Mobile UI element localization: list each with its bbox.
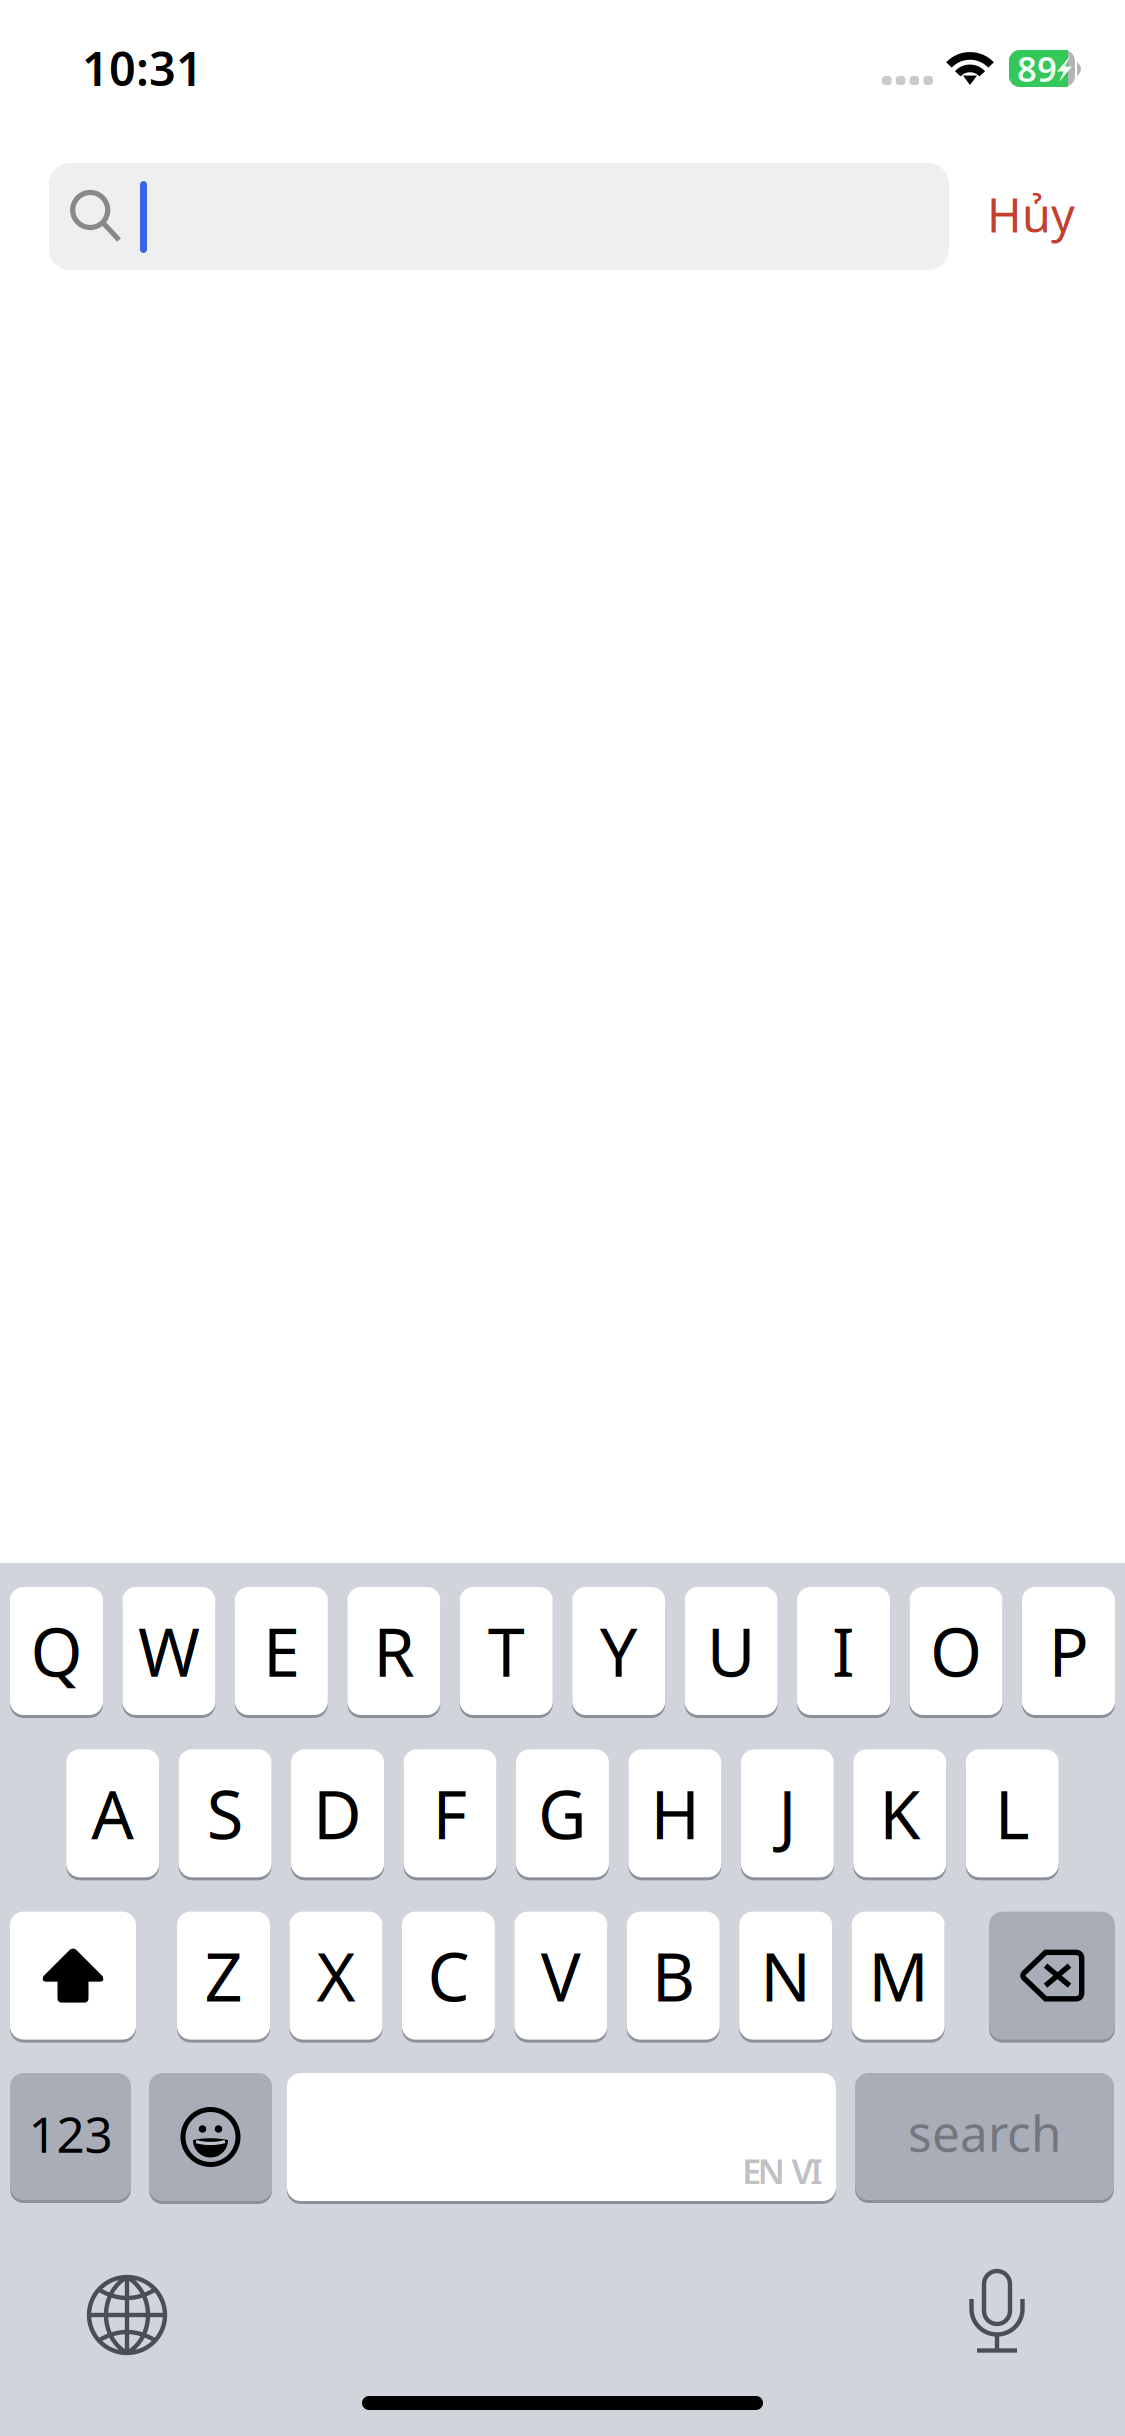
staticText: 10:31 — [82, 37, 203, 99]
button[interactable]: M — [852, 1910, 945, 2042]
staticText: R — [373, 1607, 414, 1695]
button[interactable]: N — [739, 1910, 832, 2042]
button[interactable]: X — [289, 1910, 382, 2042]
staticText: C — [427, 1931, 469, 2020]
staticText: 123 — [28, 2101, 112, 2166]
button[interactable]: 123 — [10, 2071, 131, 2202]
staticText: S — [207, 1769, 244, 1857]
staticText: EN VI — [742, 2148, 823, 2194]
staticText: N — [760, 1931, 811, 2020]
staticText: U — [707, 1607, 756, 1695]
button[interactable]: P — [1022, 1585, 1115, 1717]
button[interactable]: O — [909, 1585, 1002, 1717]
button[interactable]: Y — [572, 1585, 665, 1717]
staticText: X — [316, 1931, 355, 2020]
button[interactable]: Z — [177, 1910, 270, 2042]
staticText: V — [541, 1931, 581, 2020]
button[interactable]: Dictation — [970, 2268, 1026, 2354]
staticText: M — [868, 1931, 928, 2020]
staticText: L — [995, 1769, 1030, 1857]
button[interactable]: Space — [287, 2071, 836, 2203]
staticText: P — [1048, 1607, 1088, 1695]
staticText: K — [879, 1769, 920, 1857]
button[interactable]: I — [797, 1585, 890, 1717]
staticText: T — [488, 1607, 525, 1695]
staticText: O — [930, 1607, 982, 1695]
button[interactable]: S — [179, 1747, 272, 1879]
button[interactable]: E — [235, 1585, 328, 1717]
button[interactable]: H — [628, 1747, 721, 1879]
staticText: search — [908, 2100, 1061, 2165]
staticText: E — [263, 1607, 300, 1695]
button[interactable]: Hủy — [961, 161, 1101, 268]
button[interactable]: K — [853, 1747, 946, 1879]
staticText: 89 — [1017, 45, 1057, 91]
button[interactable]: C — [402, 1910, 495, 2042]
staticText: F — [432, 1769, 467, 1857]
button[interactable]: D — [291, 1747, 384, 1879]
button[interactable]: W — [122, 1585, 215, 1717]
staticText: A — [91, 1769, 134, 1857]
staticText: J — [778, 1769, 796, 1857]
staticText: G — [538, 1769, 587, 1857]
staticText: Q — [30, 1607, 82, 1695]
button[interactable]: Next keyboard — [87, 2275, 167, 2355]
button[interactable]: Shift — [10, 1910, 136, 2042]
button[interactable]: U — [685, 1585, 778, 1717]
staticText: I — [832, 1607, 855, 1695]
staticText: W — [138, 1607, 200, 1695]
button[interactable]: J — [741, 1747, 834, 1879]
button[interactable]: search — [855, 2071, 1114, 2202]
button[interactable]: A — [66, 1747, 159, 1879]
staticText: H — [650, 1769, 699, 1857]
staticText: B — [652, 1931, 695, 2020]
staticText: D — [313, 1769, 362, 1857]
button[interactable]: G — [516, 1747, 609, 1879]
button[interactable]: F — [403, 1747, 496, 1879]
button[interactable]: Delete — [989, 1910, 1115, 2042]
staticText: Y — [600, 1607, 638, 1695]
button[interactable]: V — [514, 1910, 607, 2042]
button[interactable]: B — [627, 1910, 720, 2042]
staticText: Hủy — [987, 183, 1075, 245]
staticText: Z — [204, 1931, 242, 2020]
button[interactable]: Q — [10, 1585, 103, 1717]
button[interactable] — [49, 163, 949, 270]
button[interactable]: Emoji — [149, 2071, 272, 2203]
button[interactable]: R — [347, 1585, 440, 1717]
button[interactable]: L — [966, 1747, 1059, 1879]
button[interactable]: T — [460, 1585, 553, 1717]
